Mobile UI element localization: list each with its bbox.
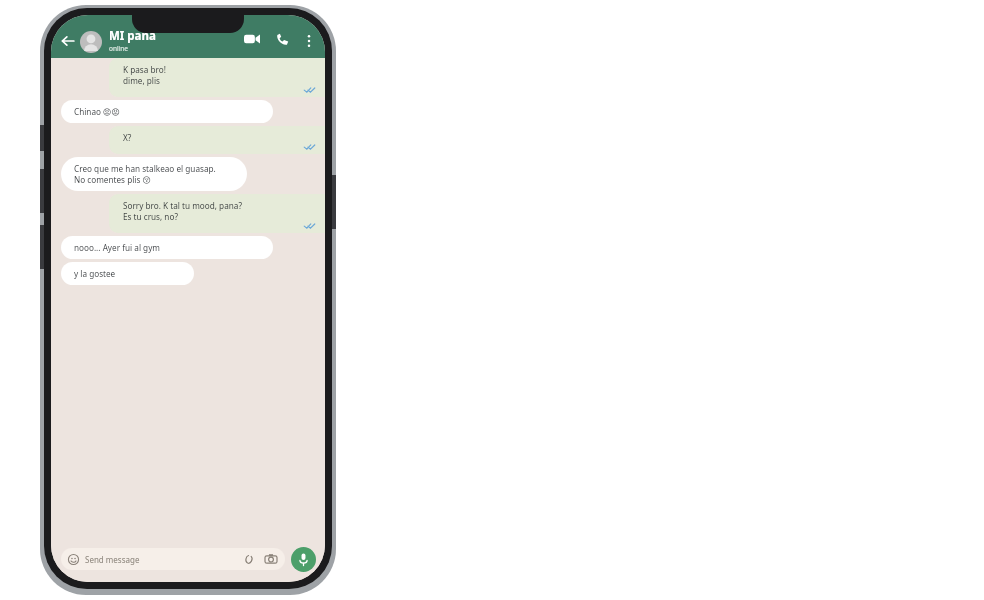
button[interactable]: y la gostee <box>61 262 194 285</box>
button[interactable]: Creo que me han stalkeao el guasap. <box>61 157 247 191</box>
button[interactable]: Chinao 😡😡 <box>61 100 273 123</box>
staticText: dime, plis <box>123 75 160 86</box>
staticText: X? <box>123 132 132 143</box>
staticText: Sorry bro. K tal tu mood, pana? <box>123 200 242 211</box>
button[interactable]: Voice call <box>272 29 292 49</box>
staticText: nooo... Ayer fui al gym <box>74 242 160 253</box>
staticText: Chinao 😡😡 <box>74 106 121 117</box>
button[interactable]: K pasa bro! <box>109 58 325 97</box>
staticText: Creo que me han stalkeao el guasap. <box>74 163 216 174</box>
staticText: K pasa bro! <box>123 64 166 75</box>
button[interactable]: Video call <box>242 29 262 49</box>
button[interactable]: Camera <box>264 552 278 566</box>
button[interactable]: Back <box>59 32 77 50</box>
button[interactable]: Profile photo <box>80 31 102 53</box>
staticText: online <box>109 44 128 53</box>
staticText: Es tu crus, no? <box>123 211 178 222</box>
staticText: No comentes plis 😚 <box>74 174 151 185</box>
button[interactable]: Record voice message <box>291 547 316 572</box>
button[interactable]: X? <box>109 126 325 154</box>
button[interactable]: nooo... Ayer fui al gym <box>61 236 273 259</box>
staticText: Send message <box>85 554 140 565</box>
button[interactable]: Attach <box>241 552 255 566</box>
button[interactable]: Sorry bro. K tal tu mood, pana? <box>109 194 325 233</box>
button[interactable]: Send message <box>61 548 285 570</box>
staticText: MI pana <box>109 28 156 44</box>
staticText: y la gostee <box>74 268 116 279</box>
button[interactable]: More options <box>301 33 317 49</box>
